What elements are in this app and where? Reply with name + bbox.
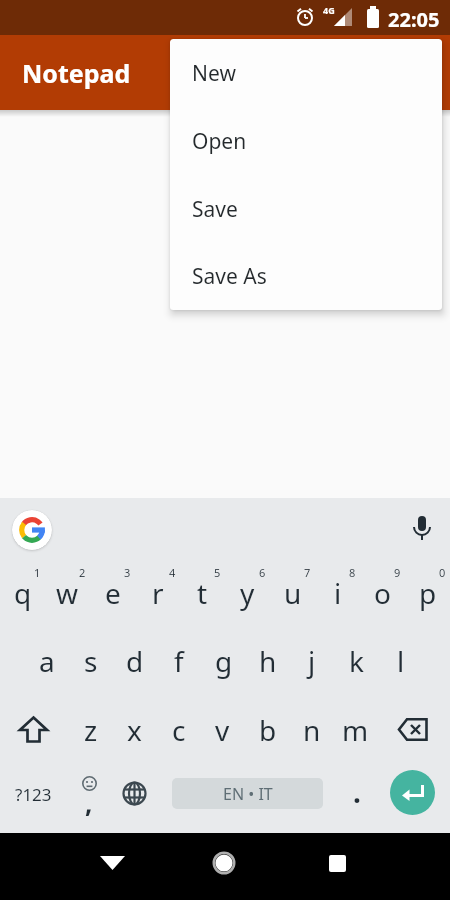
staticText: 3 bbox=[124, 565, 131, 580]
button[interactable]: n bbox=[289, 695, 334, 764]
button[interactable] bbox=[405, 512, 439, 546]
button[interactable] bbox=[380, 695, 447, 764]
staticText: q bbox=[14, 574, 32, 612]
button[interactable]: o bbox=[360, 558, 405, 627]
staticText: 1 bbox=[34, 565, 41, 580]
button[interactable]: s bbox=[68, 627, 113, 695]
staticText: 2 bbox=[79, 565, 86, 580]
staticText: Save bbox=[192, 195, 238, 224]
staticText: 22:05 bbox=[388, 6, 440, 33]
staticText: p bbox=[419, 574, 437, 612]
staticText: 6 bbox=[259, 565, 266, 580]
staticText: . bbox=[353, 773, 361, 811]
staticText: u bbox=[284, 574, 302, 612]
staticText: z bbox=[84, 711, 98, 749]
staticText: b bbox=[259, 711, 277, 749]
button[interactable]: i bbox=[315, 558, 360, 627]
staticText: Notepad bbox=[22, 56, 131, 90]
button[interactable]: e bbox=[90, 558, 135, 627]
staticText: 9 bbox=[394, 565, 401, 580]
button[interactable]: t bbox=[180, 558, 225, 627]
staticText: i bbox=[334, 574, 342, 612]
button[interactable]: w bbox=[45, 558, 90, 627]
button[interactable]: EN • IT bbox=[157, 764, 323, 833]
staticText: w bbox=[56, 574, 79, 612]
button[interactable]: r bbox=[135, 558, 180, 627]
staticText: o bbox=[374, 574, 391, 612]
staticText: v bbox=[215, 711, 230, 749]
button[interactable]: f bbox=[156, 627, 201, 695]
button[interactable] bbox=[12, 510, 52, 550]
staticText: e bbox=[105, 574, 121, 612]
button[interactable]: p bbox=[405, 558, 450, 627]
button[interactable]: b bbox=[245, 695, 290, 764]
staticText: 4G bbox=[323, 4, 335, 16]
staticText: 0 bbox=[439, 565, 446, 580]
button[interactable] bbox=[112, 764, 157, 833]
button[interactable]: Notepad bbox=[0, 35, 450, 110]
staticText: f bbox=[174, 642, 184, 680]
button[interactable]: c bbox=[156, 695, 201, 764]
button[interactable]: Save bbox=[170, 175, 442, 243]
staticText: 5 bbox=[214, 565, 221, 580]
button[interactable] bbox=[0, 110, 450, 498]
button[interactable]: Open bbox=[170, 107, 442, 175]
staticText: ?123 bbox=[15, 783, 52, 806]
staticText: n bbox=[303, 711, 321, 749]
staticText: EN • IT bbox=[223, 783, 273, 805]
button[interactable]: z bbox=[68, 695, 113, 764]
button[interactable] bbox=[200, 839, 248, 887]
button[interactable] bbox=[313, 839, 361, 887]
staticText: j bbox=[308, 642, 316, 680]
button[interactable]: k bbox=[334, 627, 379, 695]
staticText: 4 bbox=[169, 565, 176, 580]
staticText: , bbox=[85, 785, 93, 820]
staticText: r bbox=[152, 574, 164, 612]
button[interactable] bbox=[88, 839, 136, 887]
button[interactable]: ?123 bbox=[0, 764, 67, 833]
staticText: h bbox=[259, 642, 277, 680]
button[interactable]: u bbox=[270, 558, 315, 627]
button[interactable]: Save As bbox=[170, 243, 442, 310]
button[interactable]: j bbox=[289, 627, 334, 695]
staticText: 7 bbox=[304, 565, 311, 580]
staticText: 8 bbox=[349, 565, 356, 580]
button[interactable]: , bbox=[67, 764, 112, 833]
button[interactable]: v bbox=[200, 695, 245, 764]
button[interactable]: x bbox=[112, 695, 157, 764]
button[interactable]: a bbox=[24, 627, 69, 695]
button[interactable] bbox=[0, 695, 67, 764]
staticText: s bbox=[84, 642, 98, 680]
staticText: d bbox=[126, 642, 144, 680]
staticText: m bbox=[342, 711, 369, 749]
button[interactable]: . bbox=[334, 764, 379, 833]
button[interactable]: m bbox=[333, 695, 378, 764]
button[interactable]: y bbox=[225, 558, 270, 627]
staticText: a bbox=[39, 642, 55, 680]
staticText: y bbox=[240, 574, 255, 612]
staticText: Save As bbox=[192, 262, 267, 291]
staticText: g bbox=[215, 642, 233, 680]
staticText: t bbox=[197, 574, 208, 612]
staticText: x bbox=[127, 711, 142, 749]
staticText: c bbox=[172, 711, 186, 749]
button[interactable]: New bbox=[170, 39, 442, 107]
staticText: Open bbox=[192, 127, 247, 156]
staticText: k bbox=[349, 642, 364, 680]
button[interactable]: g bbox=[201, 627, 246, 695]
staticText: l bbox=[397, 642, 405, 680]
staticText: New bbox=[192, 59, 236, 88]
button[interactable]: d bbox=[112, 627, 157, 695]
button[interactable] bbox=[390, 770, 435, 815]
button[interactable]: l bbox=[378, 627, 423, 695]
button[interactable]: h bbox=[245, 627, 290, 695]
button[interactable]: q bbox=[0, 558, 45, 627]
